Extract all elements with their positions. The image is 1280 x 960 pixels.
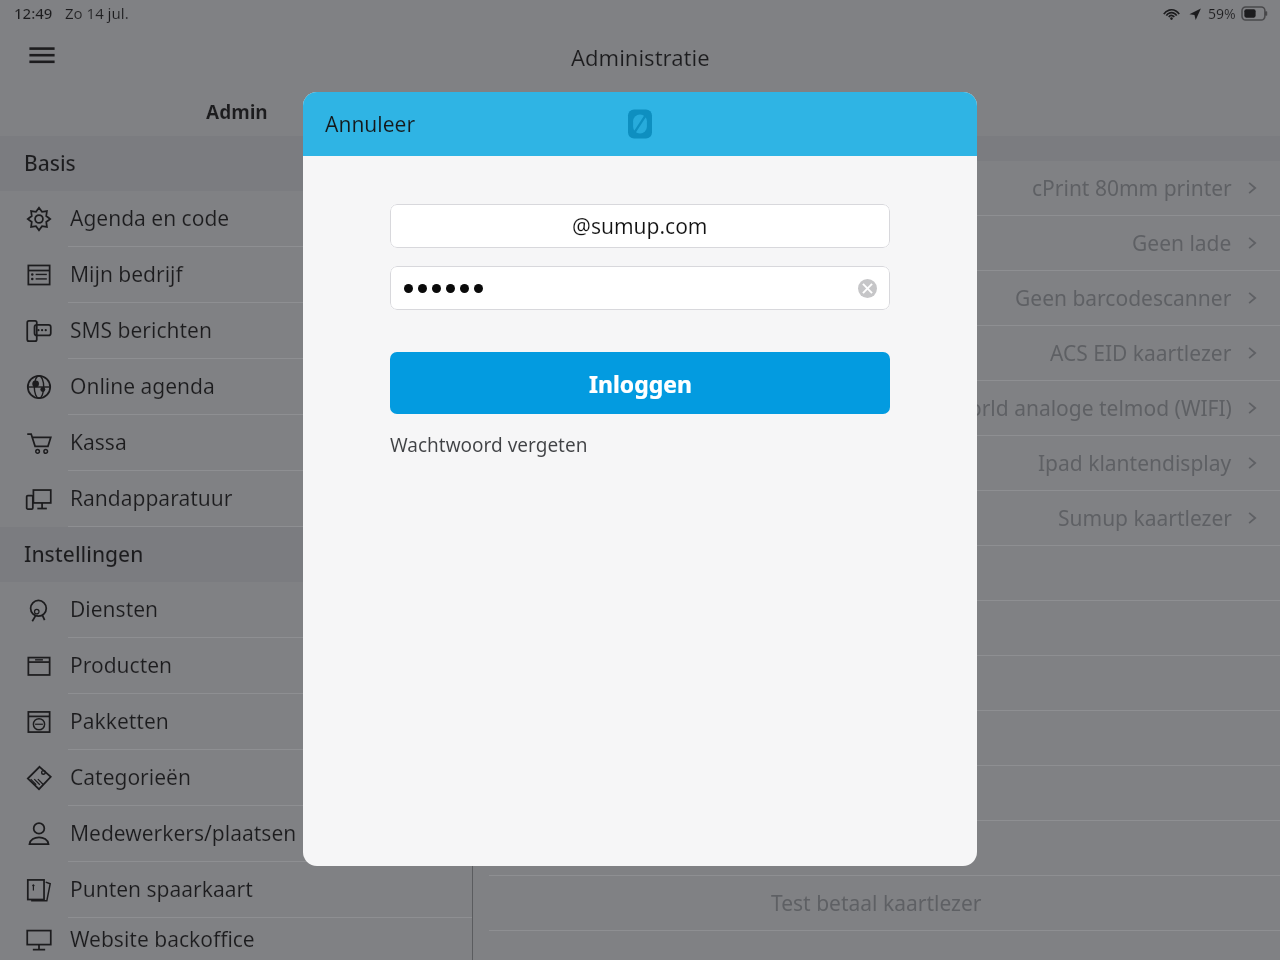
staticText: Inloggen bbox=[589, 368, 692, 399]
button[interactable]: Punten spaarkaart bbox=[0, 862, 472, 918]
button[interactable]: Producten bbox=[0, 638, 472, 694]
staticText: Sumup kaartlezer bbox=[1058, 504, 1232, 533]
staticText: Diensten bbox=[70, 595, 159, 624]
button[interactable]: Inloggen bbox=[390, 352, 890, 414]
staticText: Basis bbox=[24, 149, 76, 178]
button[interactable]: Pakketten bbox=[0, 694, 472, 750]
button[interactable]: Sumup kaartlezer bbox=[473, 491, 1280, 546]
staticText: 59% bbox=[1208, 4, 1236, 23]
staticText: Randapparatuur bbox=[70, 484, 233, 513]
staticText: Pakketten bbox=[70, 707, 169, 736]
staticText: Posworld analoge telmod (WIFI) bbox=[917, 394, 1232, 423]
button[interactable]: @sumup.com bbox=[390, 204, 890, 248]
staticText: Instellingen bbox=[24, 540, 144, 569]
button[interactable]: ACS EID kaartlezer bbox=[473, 326, 1280, 381]
button[interactable]: Agenda en code bbox=[0, 191, 472, 247]
button[interactable]: Ipad klantendisplay bbox=[473, 436, 1280, 491]
staticText: Categorieën bbox=[70, 763, 191, 792]
button[interactable]: Geen lade bbox=[473, 216, 1280, 271]
button[interactable]: Online agenda bbox=[0, 359, 472, 415]
staticText: Geen barcodescanner bbox=[1015, 284, 1232, 313]
staticText: Test betaal kaartlezer bbox=[771, 889, 982, 918]
staticText: Annuleer bbox=[325, 110, 416, 139]
button[interactable]: Medewerkers/plaatsen bbox=[0, 806, 472, 862]
button[interactable]: Wachtwoord vergeten bbox=[390, 432, 588, 458]
button[interactable]: Menu bbox=[20, 35, 64, 79]
staticText: 12:49 bbox=[14, 3, 53, 23]
staticText: @sumup.com bbox=[572, 212, 708, 241]
staticText: Wachtwoord vergeten bbox=[390, 432, 588, 458]
staticText: Producten bbox=[70, 651, 173, 680]
button[interactable]: Kassa bbox=[0, 415, 472, 471]
button[interactable]: SMS berichten bbox=[0, 303, 472, 359]
staticText: Ipad klantendisplay bbox=[1038, 449, 1232, 478]
button[interactable]: Mijn bedrijf bbox=[0, 247, 472, 303]
button[interactable]: Categorieën bbox=[0, 750, 472, 806]
staticText: Agenda en code bbox=[70, 204, 230, 233]
button[interactable]: Diensten bbox=[0, 582, 472, 638]
staticText: Punten spaarkaart bbox=[70, 875, 253, 904]
staticText: ACS EID kaartlezer bbox=[1050, 339, 1232, 368]
staticText: Online agenda bbox=[70, 372, 215, 401]
staticText: Website backoffice bbox=[70, 925, 255, 954]
staticText: Medewerkers/plaatsen bbox=[70, 819, 297, 848]
button[interactable]: Randapparatuur bbox=[0, 471, 472, 527]
staticText: Administratie bbox=[571, 42, 710, 72]
button[interactable]: Website backoffice bbox=[0, 918, 472, 960]
button[interactable]: Geen barcodescanner bbox=[473, 271, 1280, 326]
staticText: Kassa bbox=[70, 428, 127, 457]
staticText: cPrint 80mm printer bbox=[1032, 174, 1232, 203]
button[interactable]: Test betaal kaartlezer bbox=[473, 876, 1280, 931]
staticText: SMS berichten bbox=[70, 316, 212, 345]
button[interactable]: Posworld analoge telmod (WIFI) bbox=[473, 381, 1280, 436]
staticText: Zo 14 jul. bbox=[65, 3, 129, 23]
staticText: Geen lade bbox=[1132, 229, 1232, 258]
button[interactable]: cPrint 80mm printer bbox=[473, 161, 1280, 216]
staticText: Admin bbox=[206, 99, 268, 125]
button[interactable]: Annuleer bbox=[311, 102, 430, 147]
button[interactable]: Wis wachtwoord bbox=[854, 275, 880, 301]
staticText: Mijn bedrijf bbox=[70, 260, 183, 289]
button[interactable]: Wis wachtwoord bbox=[390, 266, 890, 310]
